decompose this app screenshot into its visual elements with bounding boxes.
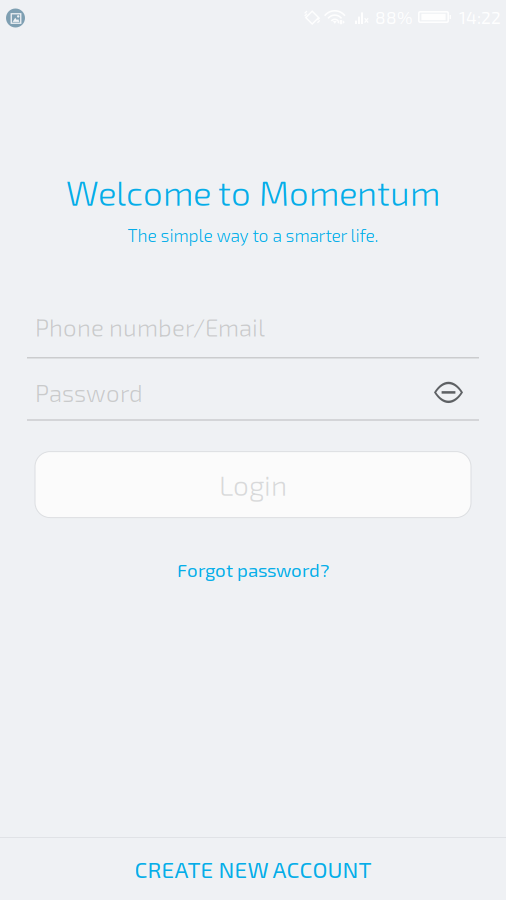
staticText: Forgot password?	[177, 558, 329, 581]
staticText: CREATE NEW ACCOUNT	[134, 856, 371, 882]
staticText: Welcome to Momentum	[66, 171, 440, 213]
staticText: The simple way to a smarter life.	[127, 225, 378, 245]
staticText: 88%	[375, 7, 412, 27]
staticText: Password	[35, 378, 143, 407]
button[interactable]: Show password	[427, 377, 479, 407]
button[interactable]: Forgot password?	[177, 553, 329, 587]
staticText: Login	[219, 468, 287, 501]
button[interactable]: CREATE NEW ACCOUNT	[0, 838, 506, 900]
button[interactable]: Login	[35, 452, 471, 518]
staticText: 14:22	[459, 7, 501, 27]
staticText: Phone number/Email	[35, 312, 265, 341]
